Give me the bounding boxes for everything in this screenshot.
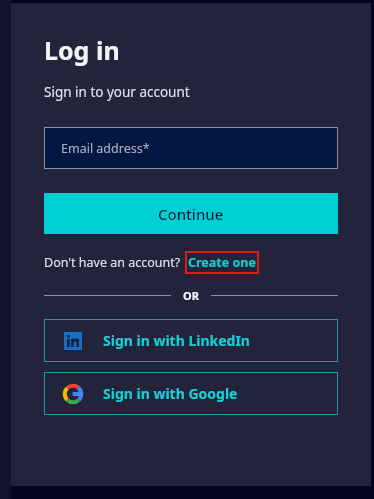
- staticText: Log in: [44, 33, 120, 67]
- staticText: Sign in with Google: [103, 384, 238, 403]
- button[interactable]: Continue: [44, 193, 338, 234]
- staticText: Sign in with LinkedIn: [103, 331, 250, 350]
- staticText: Create one: [188, 254, 256, 271]
- staticText: Continue: [158, 204, 224, 224]
- button[interactable]: Email address*: [44, 127, 338, 169]
- button[interactable]: Create one: [185, 251, 259, 274]
- staticText: Don't have an account?: [44, 254, 181, 271]
- button[interactable]: Sign in with LinkedIn: [44, 319, 338, 362]
- staticText: Email address*: [61, 140, 150, 157]
- staticText: Sign in to your account: [44, 83, 190, 101]
- staticText: OR: [183, 288, 199, 303]
- button[interactable]: Sign in with Google: [44, 372, 338, 415]
